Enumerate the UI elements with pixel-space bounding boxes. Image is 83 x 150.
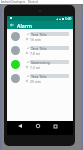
staticText: Test Title — [31, 32, 47, 37]
staticText: Test Title — [31, 74, 47, 79]
staticText: 7.8 mi — [30, 51, 40, 56]
button[interactable]: Swimming — [7, 58, 73, 72]
staticText: Swimming — [31, 60, 50, 65]
button[interactable]: Back — [15, 121, 25, 131]
staticText: 16 min — [30, 37, 41, 42]
button[interactable]: Back — [7, 21, 16, 29]
staticText: Android Developers — [1, 0, 26, 4]
staticText: 5:00 — [65, 17, 72, 21]
staticText: 1.3 mi — [30, 65, 40, 70]
button[interactable]: Test Title — [7, 30, 73, 44]
staticText: Test Title — [31, 46, 47, 51]
staticText: Alarm — [17, 22, 32, 29]
staticText: Material — [28, 0, 39, 4]
staticText: 25 min — [30, 79, 41, 84]
button[interactable]: Home — [33, 121, 43, 131]
button[interactable]: Test Title — [7, 44, 73, 58]
button[interactable]: Test Title — [7, 72, 73, 86]
button[interactable]: Recents — [50, 121, 60, 131]
